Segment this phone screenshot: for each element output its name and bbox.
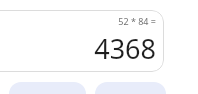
button[interactable]: Suggestion <box>9 82 86 94</box>
staticText: 52 * 84 = <box>118 15 156 27</box>
button[interactable]: Suggestion <box>95 82 166 94</box>
staticText: 4368 <box>94 30 156 67</box>
button[interactable]: 52 * 84 = <box>0 10 164 72</box>
